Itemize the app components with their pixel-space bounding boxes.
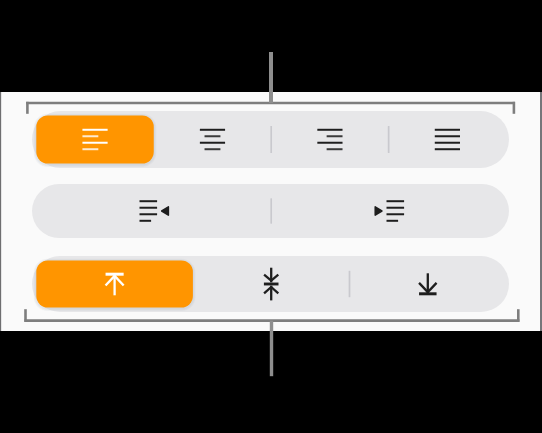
- button[interactable]: Align bottom: [349, 256, 506, 312]
- button[interactable]: Align right: [270, 111, 388, 168]
- button[interactable]: Align left: [36, 111, 153, 168]
- button[interactable]: Align center: [153, 111, 270, 168]
- button[interactable]: Increase indent: [271, 184, 506, 238]
- button[interactable]: Align top: [36, 256, 192, 312]
- button[interactable]: Justify: [388, 111, 506, 168]
- button[interactable]: Align middle: [192, 256, 349, 312]
- button[interactable]: Decrease indent: [36, 184, 271, 238]
